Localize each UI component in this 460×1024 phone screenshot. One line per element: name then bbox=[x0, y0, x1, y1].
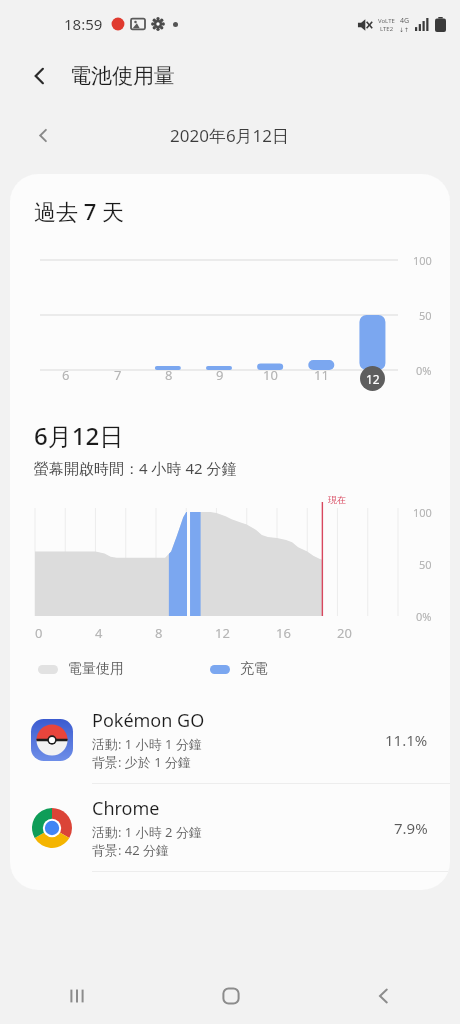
staticText: LTE2 bbox=[380, 25, 394, 33]
staticText: 11 bbox=[314, 366, 329, 384]
staticText: 10 bbox=[263, 366, 278, 384]
staticText: Chrome bbox=[92, 796, 160, 821]
staticText: 4G bbox=[400, 16, 410, 26]
button[interactable]: Recents bbox=[0, 968, 154, 1024]
staticText: VoLTE bbox=[378, 17, 395, 25]
staticText: 螢幕開啟時間：4 小時 42 分鐘 bbox=[34, 458, 237, 478]
button[interactable]: Pokémon GO bbox=[10, 696, 450, 783]
button[interactable]: Back bbox=[307, 968, 460, 1024]
staticText: 6月12日 bbox=[34, 419, 124, 452]
staticText: 充電 bbox=[240, 660, 268, 678]
staticText: 過去 7 天 bbox=[34, 196, 125, 226]
staticText: 12 bbox=[366, 371, 380, 387]
staticText: 8 bbox=[155, 624, 163, 642]
button[interactable]: Previous day bbox=[26, 118, 60, 152]
staticText: 18:59 bbox=[64, 14, 103, 34]
staticText: 12 bbox=[215, 624, 230, 642]
staticText: 7.9% bbox=[394, 818, 428, 838]
button[interactable]: Home bbox=[154, 968, 307, 1024]
staticText: 50 bbox=[419, 308, 432, 323]
staticText: 8 bbox=[165, 366, 173, 384]
staticText: 16 bbox=[276, 624, 291, 642]
staticText: 4 bbox=[95, 624, 103, 642]
staticText: 0% bbox=[416, 363, 432, 378]
staticText: 9 bbox=[216, 366, 224, 384]
staticText: 100 bbox=[413, 505, 432, 520]
staticText: 0% bbox=[416, 609, 432, 624]
staticText: 背景: 少於 1 分鐘 bbox=[92, 753, 192, 771]
staticText: 電量使用 bbox=[68, 660, 124, 678]
staticText: 現在 bbox=[328, 494, 346, 505]
staticText: 11.1% bbox=[385, 730, 428, 750]
staticText: 2020年6月12日 bbox=[170, 124, 290, 147]
button[interactable]: Back bbox=[22, 58, 58, 94]
staticText: ↓↑ bbox=[399, 26, 410, 33]
staticText: 背景: 42 分鐘 bbox=[92, 841, 170, 859]
staticText: 0 bbox=[35, 624, 43, 642]
staticText: 20 bbox=[337, 624, 352, 642]
staticText: 100 bbox=[413, 253, 432, 268]
staticText: 6 bbox=[62, 366, 70, 384]
staticText: Pokémon GO bbox=[92, 708, 205, 733]
staticText: 活動: 1 小時 2 分鐘 bbox=[92, 823, 202, 841]
staticText: 電池使用量 bbox=[70, 63, 175, 89]
button[interactable]: Chrome bbox=[10, 784, 450, 871]
staticText: 7 bbox=[114, 366, 122, 384]
staticText: 活動: 1 小時 1 分鐘 bbox=[92, 735, 202, 753]
staticText: 50 bbox=[419, 557, 432, 572]
